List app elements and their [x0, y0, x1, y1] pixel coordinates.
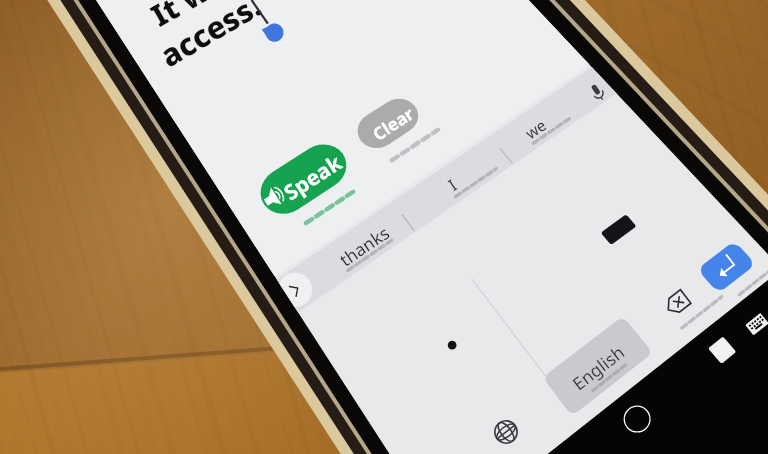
other: Google Translate conversation screen	[0, 0, 768, 454]
